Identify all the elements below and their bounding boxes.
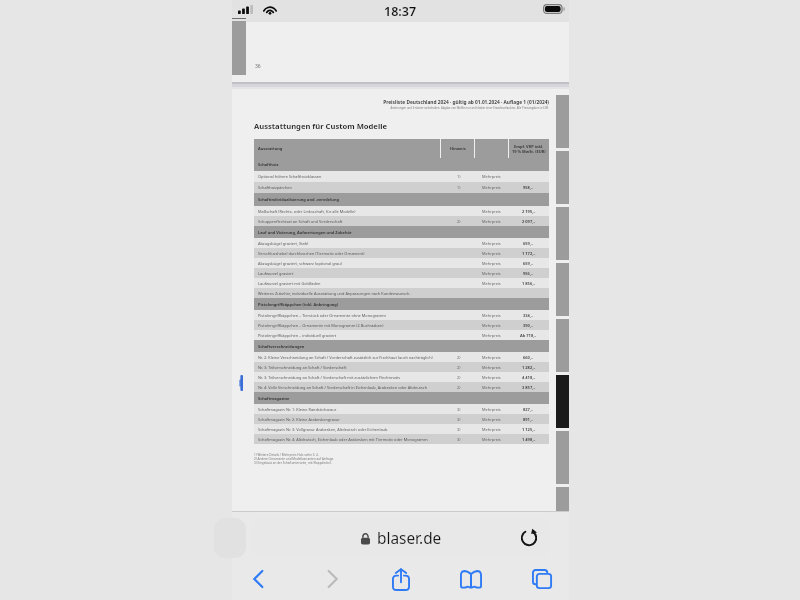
staticText: 827,– bbox=[523, 407, 534, 412]
staticText: Laufwurzel graviert mit Goldfaden bbox=[258, 281, 321, 286]
staticText: 1 856,– bbox=[522, 281, 536, 286]
staticText: Schaftverschneidungen bbox=[258, 344, 305, 349]
staticText: Pistolengriffkäppchen – individuell grav… bbox=[258, 333, 337, 338]
button[interactable]: Bookmarks bbox=[452, 560, 490, 598]
staticText: Schuppenflechtsat an Schaft und Vordersc… bbox=[258, 219, 343, 224]
staticText: Pistolengriffkäppchen – Tierstück oder O… bbox=[258, 313, 386, 318]
staticText: 19 % MwSt. (EUR) bbox=[512, 149, 546, 154]
staticText: Mehrpreis bbox=[482, 209, 501, 214]
staticText: 3) bbox=[457, 437, 461, 442]
staticText: Mehrpreis bbox=[482, 313, 501, 318]
staticText: 3) bbox=[457, 417, 461, 422]
staticText: 1 172,– bbox=[522, 251, 536, 256]
staticText: Maßschaft (Rechts- oder Linksschaft, für… bbox=[258, 209, 356, 214]
staticText: 956,– bbox=[523, 271, 534, 276]
staticText: Schafthoizpärchen bbox=[258, 185, 292, 190]
staticText: Schaftmagazin Nr. 1: Kleine Randstichara… bbox=[258, 407, 337, 412]
staticText: Laufwurzel graviert bbox=[258, 271, 294, 276]
staticText: 659,– bbox=[523, 241, 534, 246]
staticText: 659,– bbox=[523, 261, 534, 266]
staticText: Hinweis bbox=[450, 146, 466, 151]
staticText: Abzugsbügel graviert, schwarz (optional … bbox=[258, 261, 342, 266]
staticText: Mehrpreis bbox=[482, 185, 501, 190]
button[interactable]: Share bbox=[382, 560, 420, 598]
staticText: 2) bbox=[457, 385, 461, 390]
staticText: Nr. 3: Teilverschneidung an Schaft / Vor… bbox=[258, 365, 347, 370]
staticText: Mehrpreis bbox=[482, 437, 501, 442]
staticText: 2) Andere Ornamente und Modellvarianten … bbox=[254, 457, 335, 461]
staticText: Schaftmagazin Nr. 3: Vollgravur Arabeske… bbox=[258, 427, 388, 432]
staticText: Mehrpreis bbox=[482, 333, 501, 338]
staticText: 1) bbox=[457, 174, 461, 179]
staticText: 2) bbox=[457, 375, 461, 380]
staticText: Mehrpreis bbox=[482, 355, 501, 360]
staticText: Mehrpreis bbox=[482, 417, 501, 422]
button[interactable]: Back bbox=[239, 560, 277, 598]
staticText: Mehrpreis bbox=[482, 261, 501, 266]
staticText: Weiteres Zubehör, individuelle Ausstattu… bbox=[258, 291, 411, 296]
staticText: Pistolengriffkäppchen – Ornamente mit Mo… bbox=[258, 323, 384, 328]
staticText: Schaftindividualisierung und -veredelung bbox=[258, 197, 339, 202]
staticText: Mehrpreis bbox=[482, 271, 501, 276]
staticText: Schaftmagazin Nr. 2: Kleine Arabeskengra… bbox=[258, 417, 340, 422]
staticText: 2) bbox=[457, 219, 461, 224]
staticText: Mehrpreis bbox=[482, 375, 501, 380]
staticText: 2) bbox=[457, 365, 461, 370]
staticText: 1 282,– bbox=[522, 365, 536, 370]
staticText: Pistolengriffkäppchen (inkl. Anbringung) bbox=[258, 302, 339, 307]
staticText: Nr. 2: Kleine Verschneidung an Schaft / … bbox=[258, 355, 433, 360]
staticText: Mehrpreis bbox=[482, 365, 501, 370]
staticText: 2 097,– bbox=[522, 219, 536, 224]
staticText: Ausstattungen für Custom Modelle bbox=[254, 121, 387, 131]
staticText: 1 498,– bbox=[522, 437, 536, 442]
staticText: Schafthoiz bbox=[258, 162, 279, 167]
staticText: Mehrpreis bbox=[482, 251, 501, 256]
staticText: Schaftmagazin Nr. 4: Altdeutsch, Eichenl… bbox=[258, 437, 428, 442]
staticText: 3) Eingebaut an der Schaftunterseite, mi… bbox=[254, 461, 332, 465]
staticText: Nr. 4: Volle Verschneidung an Schaft / V… bbox=[258, 385, 428, 390]
staticText: 891,– bbox=[523, 417, 534, 422]
staticText: Abzugsbügel graviert, Stahl bbox=[258, 241, 309, 246]
staticText: 2) bbox=[457, 355, 461, 360]
button[interactable]: Reload page bbox=[516, 525, 542, 551]
staticText: Schaftmagazine bbox=[258, 396, 290, 401]
staticText: Mehrpreis bbox=[482, 219, 501, 224]
button[interactable]: Forward bbox=[313, 560, 351, 598]
staticText: 4 418,– bbox=[522, 375, 536, 380]
staticText: Mehrpreis bbox=[482, 174, 501, 179]
staticText: 3) bbox=[457, 407, 461, 412]
staticText: 3 857,– bbox=[522, 385, 536, 390]
staticText: Empf. VKP inkl. bbox=[514, 144, 544, 149]
staticText: 36 bbox=[255, 63, 261, 70]
staticText: Ausstattung bbox=[258, 146, 283, 151]
staticText: 18:37 bbox=[384, 3, 417, 20]
staticText: Änderungen und Irrtümer vorbehalten. Abg… bbox=[254, 106, 549, 110]
staticText: 334,– bbox=[523, 313, 534, 318]
staticText: 1) Weitere Details / Mehrpreis Holz sieh… bbox=[254, 453, 319, 457]
staticText: Mehrpreis bbox=[482, 281, 501, 286]
staticText: 2 195,– bbox=[522, 209, 536, 214]
staticText: Mehrpreis bbox=[482, 323, 501, 328]
button[interactable]: Tabs bbox=[523, 560, 561, 598]
staticText: Preisliste Deutschland 2024 · gültig ab … bbox=[254, 99, 549, 106]
staticText: Mehrpreis bbox=[482, 427, 501, 432]
staticText: Ab 718,– bbox=[520, 333, 537, 338]
staticText: blaser.de bbox=[377, 528, 442, 549]
staticText: 660,– bbox=[523, 355, 534, 360]
staticText: 1) bbox=[457, 185, 461, 190]
staticText: 3) bbox=[457, 427, 461, 432]
staticText: 1 125,– bbox=[522, 427, 536, 432]
staticText: Mehrpreis bbox=[482, 241, 501, 246]
button[interactable]: blaser.de bbox=[252, 518, 550, 558]
staticText: Optional höhere Schafthoizklassen bbox=[258, 174, 322, 179]
staticText: Mehrpreis bbox=[482, 385, 501, 390]
staticText: Verschlusshebel durchbrochen (Tiermotiv … bbox=[258, 251, 365, 256]
staticText: 390,– bbox=[523, 323, 534, 328]
staticText: Lauf und Visierung, Aufwertungen und Zub… bbox=[258, 230, 352, 235]
staticText: Mehrpreis bbox=[482, 407, 501, 412]
staticText: Nr. 3: Teilverschneidung an Schaft / Vor… bbox=[258, 375, 401, 380]
staticText: 958,– bbox=[523, 185, 534, 190]
